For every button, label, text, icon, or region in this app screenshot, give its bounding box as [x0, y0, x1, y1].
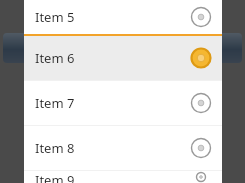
staticText: Item 6 [35, 49, 75, 67]
other: Radio button [190, 171, 212, 183]
staticText: Item 8 [35, 139, 75, 157]
button[interactable]: Item 5 [24, 0, 222, 34]
staticText: Item 5 [35, 8, 75, 26]
staticText: Item 7 [35, 94, 75, 112]
button[interactable]: Item 6 [24, 36, 222, 80]
staticText: Item 9 [35, 171, 75, 183]
button[interactable]: Item 7 [24, 81, 222, 125]
button[interactable]: Item 8 [24, 126, 222, 170]
other: Radio button [190, 92, 212, 114]
other: Radio button [190, 137, 212, 159]
other: Radio button [190, 6, 212, 28]
other: Selected radio button [190, 47, 212, 69]
button[interactable]: Item 9 [24, 171, 222, 183]
